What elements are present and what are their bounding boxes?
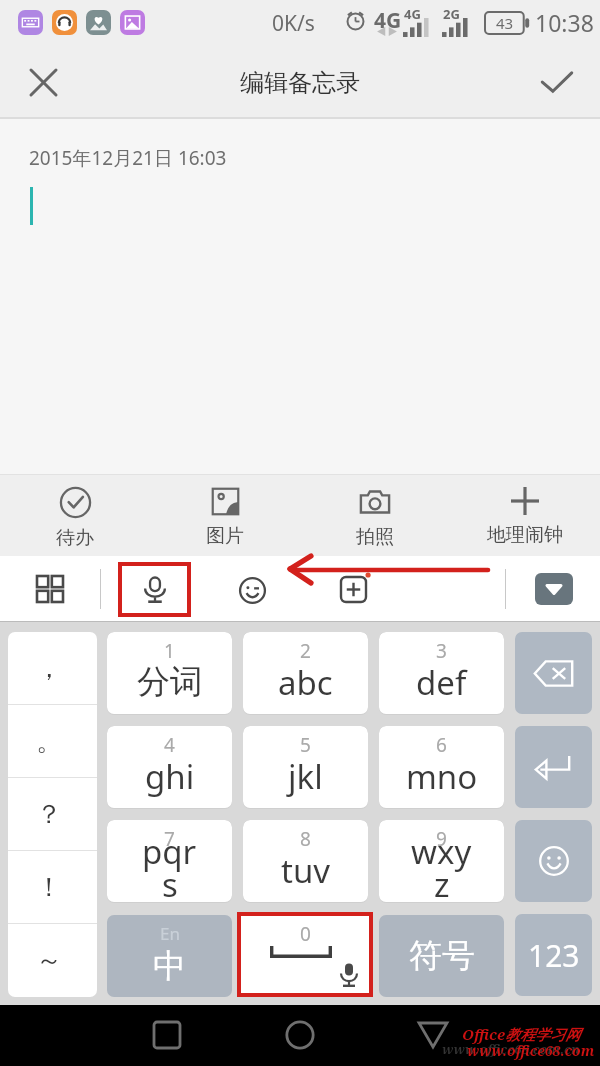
staticText: pqr — [142, 829, 197, 874]
button[interactable]: 符号 — [379, 915, 504, 997]
button[interactable]: More — [320, 556, 386, 622]
button[interactable]: Emoji — [515, 820, 592, 902]
button[interactable]: Home — [263, 1005, 336, 1066]
staticText: mno — [406, 754, 478, 799]
staticText: 4G — [374, 6, 402, 35]
staticText: 2 — [300, 638, 311, 664]
button[interactable]: 6 — [379, 726, 504, 808]
button[interactable]: Numbers — [515, 914, 592, 996]
staticText: 9 — [436, 826, 447, 852]
staticText: 编辑备忘录 — [240, 68, 360, 98]
staticText: 3 — [436, 638, 447, 664]
button[interactable]: 1 — [107, 632, 232, 714]
staticText: 中 — [153, 945, 186, 987]
staticText: ， — [36, 652, 62, 685]
staticText: z — [434, 862, 450, 899]
staticText: s — [162, 862, 178, 899]
button[interactable]: 9 — [379, 820, 504, 902]
staticText: jkl — [288, 754, 323, 799]
button[interactable]: 图片 — [150, 475, 300, 556]
button[interactable]: En — [107, 915, 232, 997]
button[interactable]: ， — [8, 632, 97, 705]
staticText: 10:38 — [535, 7, 594, 38]
staticText: 0K/s — [272, 9, 315, 38]
staticText: wxy — [411, 829, 472, 874]
staticText: 地理闹钟 — [487, 523, 563, 547]
staticText: 。 — [36, 725, 62, 758]
button[interactable]: 2 — [243, 632, 368, 714]
staticText: ～ — [36, 944, 62, 977]
staticText: 7 — [164, 826, 175, 852]
staticText: 8 — [300, 826, 311, 852]
staticText: 5 — [300, 732, 311, 758]
staticText: 图片 — [206, 524, 244, 548]
button[interactable]: Back — [396, 1005, 469, 1066]
button[interactable]: Emoji — [219, 556, 285, 622]
button[interactable]: ～ — [8, 924, 97, 997]
staticText: Office教程学习网 — [462, 1024, 581, 1044]
staticText: 6 — [436, 732, 447, 758]
staticText: def — [416, 660, 467, 705]
button[interactable]: 5 — [243, 726, 368, 808]
button[interactable]: 。 — [8, 705, 97, 778]
staticText: www.office68.com.cn — [442, 1040, 580, 1058]
staticText: 2015年12月21日 16:03 — [29, 145, 227, 171]
button[interactable]: Voice input — [118, 562, 191, 617]
button[interactable]: 4 — [107, 726, 232, 808]
button[interactable]: 地理闹钟 — [450, 475, 600, 556]
button[interactable]: 7 — [107, 820, 232, 902]
staticText: ！ — [36, 871, 62, 904]
button[interactable]: Close — [0, 46, 86, 119]
button[interactable]: Enter — [515, 726, 592, 808]
button[interactable]: 待办 — [0, 475, 150, 556]
staticText: 符号 — [409, 935, 475, 977]
staticText: 123 — [528, 935, 580, 976]
staticText: 待办 — [56, 526, 94, 550]
staticText: ？ — [36, 798, 62, 831]
staticText: abc — [278, 660, 333, 705]
staticText: 4 — [164, 732, 175, 758]
staticText: 分词 — [137, 661, 203, 703]
button[interactable]: Recents — [130, 1005, 203, 1066]
staticText: 2G — [443, 5, 460, 23]
staticText: tuv — [281, 848, 331, 893]
button[interactable]: 拍照 — [300, 475, 450, 556]
button[interactable]: Keyboard layouts — [0, 556, 100, 622]
button[interactable]: ！ — [8, 851, 97, 924]
staticText: ghi — [145, 754, 195, 799]
staticText: 1 — [164, 638, 175, 664]
button[interactable]: Save — [514, 46, 600, 119]
button[interactable]: ？ — [8, 778, 97, 851]
button[interactable]: Hide keyboard — [535, 573, 573, 605]
button[interactable]: 8 — [243, 820, 368, 902]
staticText: 43 — [496, 13, 514, 33]
staticText: 0 — [300, 921, 311, 947]
staticText: 拍照 — [356, 525, 394, 549]
button[interactable]: Delete — [515, 632, 592, 714]
staticText: 4G — [404, 5, 421, 23]
button[interactable]: Space — [241, 916, 369, 993]
button[interactable]: 3 — [379, 632, 504, 714]
staticText: En — [160, 922, 180, 945]
staticText: www.office68.com — [467, 1041, 595, 1060]
